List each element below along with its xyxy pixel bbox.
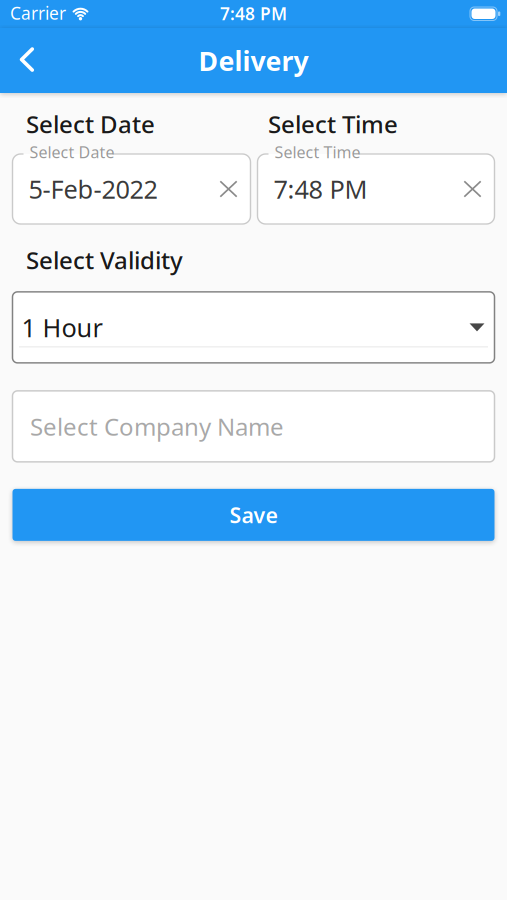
button[interactable]: Save	[12, 489, 494, 541]
button[interactable]: Clear	[208, 154, 248, 224]
button[interactable]: Clear	[452, 154, 492, 224]
staticText: Select Company Name	[30, 410, 284, 442]
staticText: Select Date	[26, 108, 155, 140]
staticText: Select Validity	[26, 244, 183, 276]
staticText: 1 Hour	[21, 311, 102, 344]
staticText: Select Time	[274, 141, 360, 163]
staticText: 5-Feb-2022	[28, 172, 157, 206]
staticText: Select Date	[29, 141, 114, 163]
staticText: Carrier	[10, 1, 66, 24]
button[interactable]: Back	[5, 35, 49, 83]
staticText: 7:48 PM	[220, 2, 287, 25]
staticText: Save	[229, 501, 277, 529]
staticText: Delivery	[198, 43, 308, 78]
button[interactable]: 1 Hour	[12, 292, 494, 363]
staticText: Select Time	[268, 108, 398, 140]
button[interactable]: 7:48 PM	[257, 154, 494, 224]
button[interactable]: Select Company Name	[12, 391, 494, 462]
button[interactable]: 5-Feb-2022	[12, 154, 250, 224]
staticText: 7:48 PM	[273, 172, 367, 206]
